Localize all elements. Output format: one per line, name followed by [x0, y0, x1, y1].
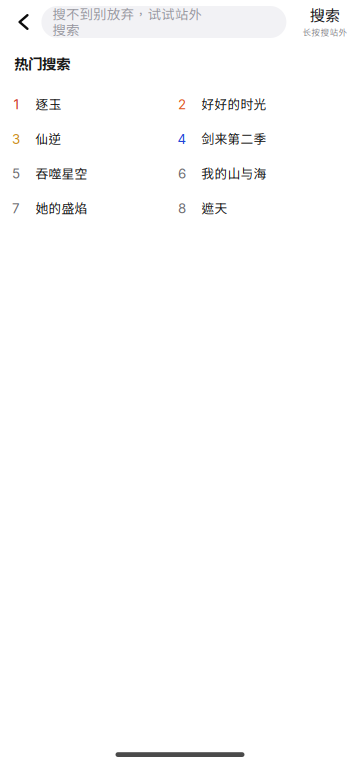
- button[interactable]: 6: [179, 156, 345, 191]
- staticText: 长按搜站外: [302, 27, 347, 37]
- staticText: 好好的时光: [202, 97, 267, 112]
- button[interactable]: 7: [13, 191, 179, 226]
- staticText: 搜索: [310, 7, 340, 24]
- staticText: 吞噬星空: [36, 166, 88, 181]
- button[interactable]: 搜不到别放弃，试试站外搜索: [41, 6, 286, 38]
- button[interactable]: 8: [179, 191, 345, 226]
- staticText: 她的盛焰: [36, 201, 88, 216]
- staticText: 热门搜索: [14, 55, 70, 72]
- button[interactable]: 1: [13, 87, 179, 122]
- staticText: 遮天: [202, 201, 228, 216]
- staticText: 搜不到别放弃，试试站外搜索: [52, 6, 215, 38]
- staticText: 仙逆: [36, 132, 62, 146]
- staticText: 3: [12, 131, 20, 147]
- staticText: 4: [178, 131, 187, 147]
- button[interactable]: 搜索: [295, 0, 355, 44]
- staticText: 7: [12, 200, 20, 216]
- staticText: 1: [14, 96, 19, 112]
- staticText: 我的山与海: [202, 166, 267, 181]
- button[interactable]: 3: [13, 122, 179, 156]
- staticText: 8: [178, 200, 186, 216]
- button[interactable]: 5: [13, 156, 179, 191]
- staticText: 逐玉: [36, 97, 62, 112]
- staticText: 6: [178, 166, 186, 182]
- staticText: 2: [178, 96, 186, 112]
- button[interactable]: Back: [16, 0, 41, 44]
- button[interactable]: 4: [179, 122, 345, 156]
- staticText: 剑来第二季: [202, 132, 267, 146]
- button[interactable]: 2: [179, 87, 345, 122]
- staticText: 5: [12, 166, 20, 182]
